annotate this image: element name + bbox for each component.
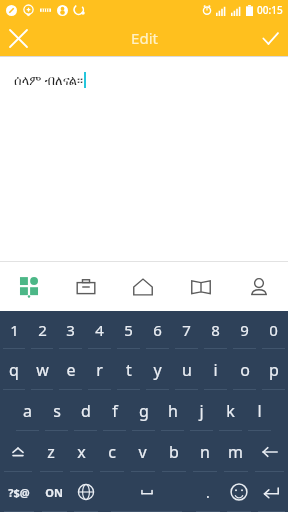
button[interactable]: p [259,349,288,390]
staticText: 6 [153,320,162,340]
staticText: p [269,359,279,381]
button[interactable]: i [201,349,230,390]
button[interactable]: m [220,431,251,472]
button[interactable]: b [158,431,189,472]
button[interactable]: Emoji [223,472,254,512]
button[interactable]: v [127,431,158,472]
staticText: . [206,483,210,502]
staticText: Edit [131,28,158,48]
button[interactable]: l [245,390,274,431]
staticText: j [199,400,204,422]
button[interactable]: ON [38,472,70,512]
staticText: 00:15 [257,3,283,17]
staticText: d [81,400,91,422]
staticText: o [240,359,250,381]
button[interactable]: Home [114,262,172,311]
button[interactable]: r [85,349,114,390]
button[interactable]: Done [252,20,288,56]
staticText: 9 [240,320,249,340]
button[interactable]: u [172,349,201,390]
staticText: a [23,400,32,422]
button[interactable]: Language [70,472,101,512]
button[interactable]: ሰላም ብለናል። [0,57,288,261]
button[interactable]: 3 [56,311,85,349]
button[interactable]: d [71,390,100,431]
button[interactable]: n [189,431,220,472]
button[interactable]: Apps [0,262,57,311]
staticText: ?$@ [8,485,30,500]
button[interactable]: 2 [28,311,56,349]
button[interactable]: k [216,390,245,431]
button[interactable]: Close [0,20,36,56]
staticText: z [47,441,55,463]
staticText: t [126,359,132,381]
button[interactable]: 0 [259,311,288,349]
button[interactable]: ?$@ [0,472,38,512]
staticText: 7 [182,320,191,340]
staticText: m [228,441,243,463]
staticText: i [213,359,218,381]
button[interactable]: . [192,472,223,512]
button[interactable]: t [114,349,143,390]
staticText: b [169,441,179,463]
staticText: c [108,441,116,463]
button[interactable]: Profile [230,262,288,311]
button[interactable]: 6 [143,311,172,349]
staticText: 4 [95,320,104,340]
staticText: ON [45,485,63,500]
button[interactable]: g [129,390,158,431]
button[interactable]: 5 [114,311,143,349]
button[interactable]: Book [172,262,230,311]
staticText: 0 [269,320,278,340]
staticText: ሰላም ብለናል። [14,71,83,89]
staticText: w [36,359,49,381]
staticText: h [168,400,178,422]
staticText: y [153,359,162,381]
button[interactable]: q [0,349,28,390]
staticText: k [226,400,235,422]
staticText: u [182,359,192,381]
button[interactable]: 7 [172,311,201,349]
staticText: q [9,359,19,381]
staticText: 3 [66,320,75,340]
staticText: e [66,359,76,381]
button[interactable]: o [230,349,259,390]
staticText: f [112,400,118,422]
staticText: n [200,441,210,463]
staticText: 8 [211,320,220,340]
button[interactable]: Space [101,472,192,512]
button[interactable]: Work [57,262,114,311]
button[interactable]: x [66,431,96,472]
button[interactable]: j [187,390,216,431]
button[interactable]: 8 [201,311,230,349]
staticText: g [139,400,149,422]
button[interactable]: s [42,390,71,431]
button[interactable]: Enter [254,472,288,512]
button[interactable]: Backspace [251,431,288,472]
staticText: s [53,400,61,422]
button[interactable]: e [56,349,85,390]
staticText: x [77,441,86,463]
button[interactable]: a [13,390,42,431]
button[interactable]: c [96,431,127,472]
staticText: v [138,441,147,463]
button[interactable]: 4 [85,311,114,349]
staticText: 1 [10,320,19,340]
button[interactable]: Shift [0,431,36,472]
button[interactable]: h [158,390,187,431]
button[interactable]: w [28,349,56,390]
button[interactable]: y [143,349,172,390]
staticText: 5 [124,320,133,340]
button[interactable]: 1 [0,311,28,349]
staticText: r [96,359,103,381]
button[interactable]: f [100,390,129,431]
staticText: 2 [38,320,47,340]
button[interactable]: z [36,431,66,472]
button[interactable]: 9 [230,311,259,349]
staticText: l [257,400,262,422]
